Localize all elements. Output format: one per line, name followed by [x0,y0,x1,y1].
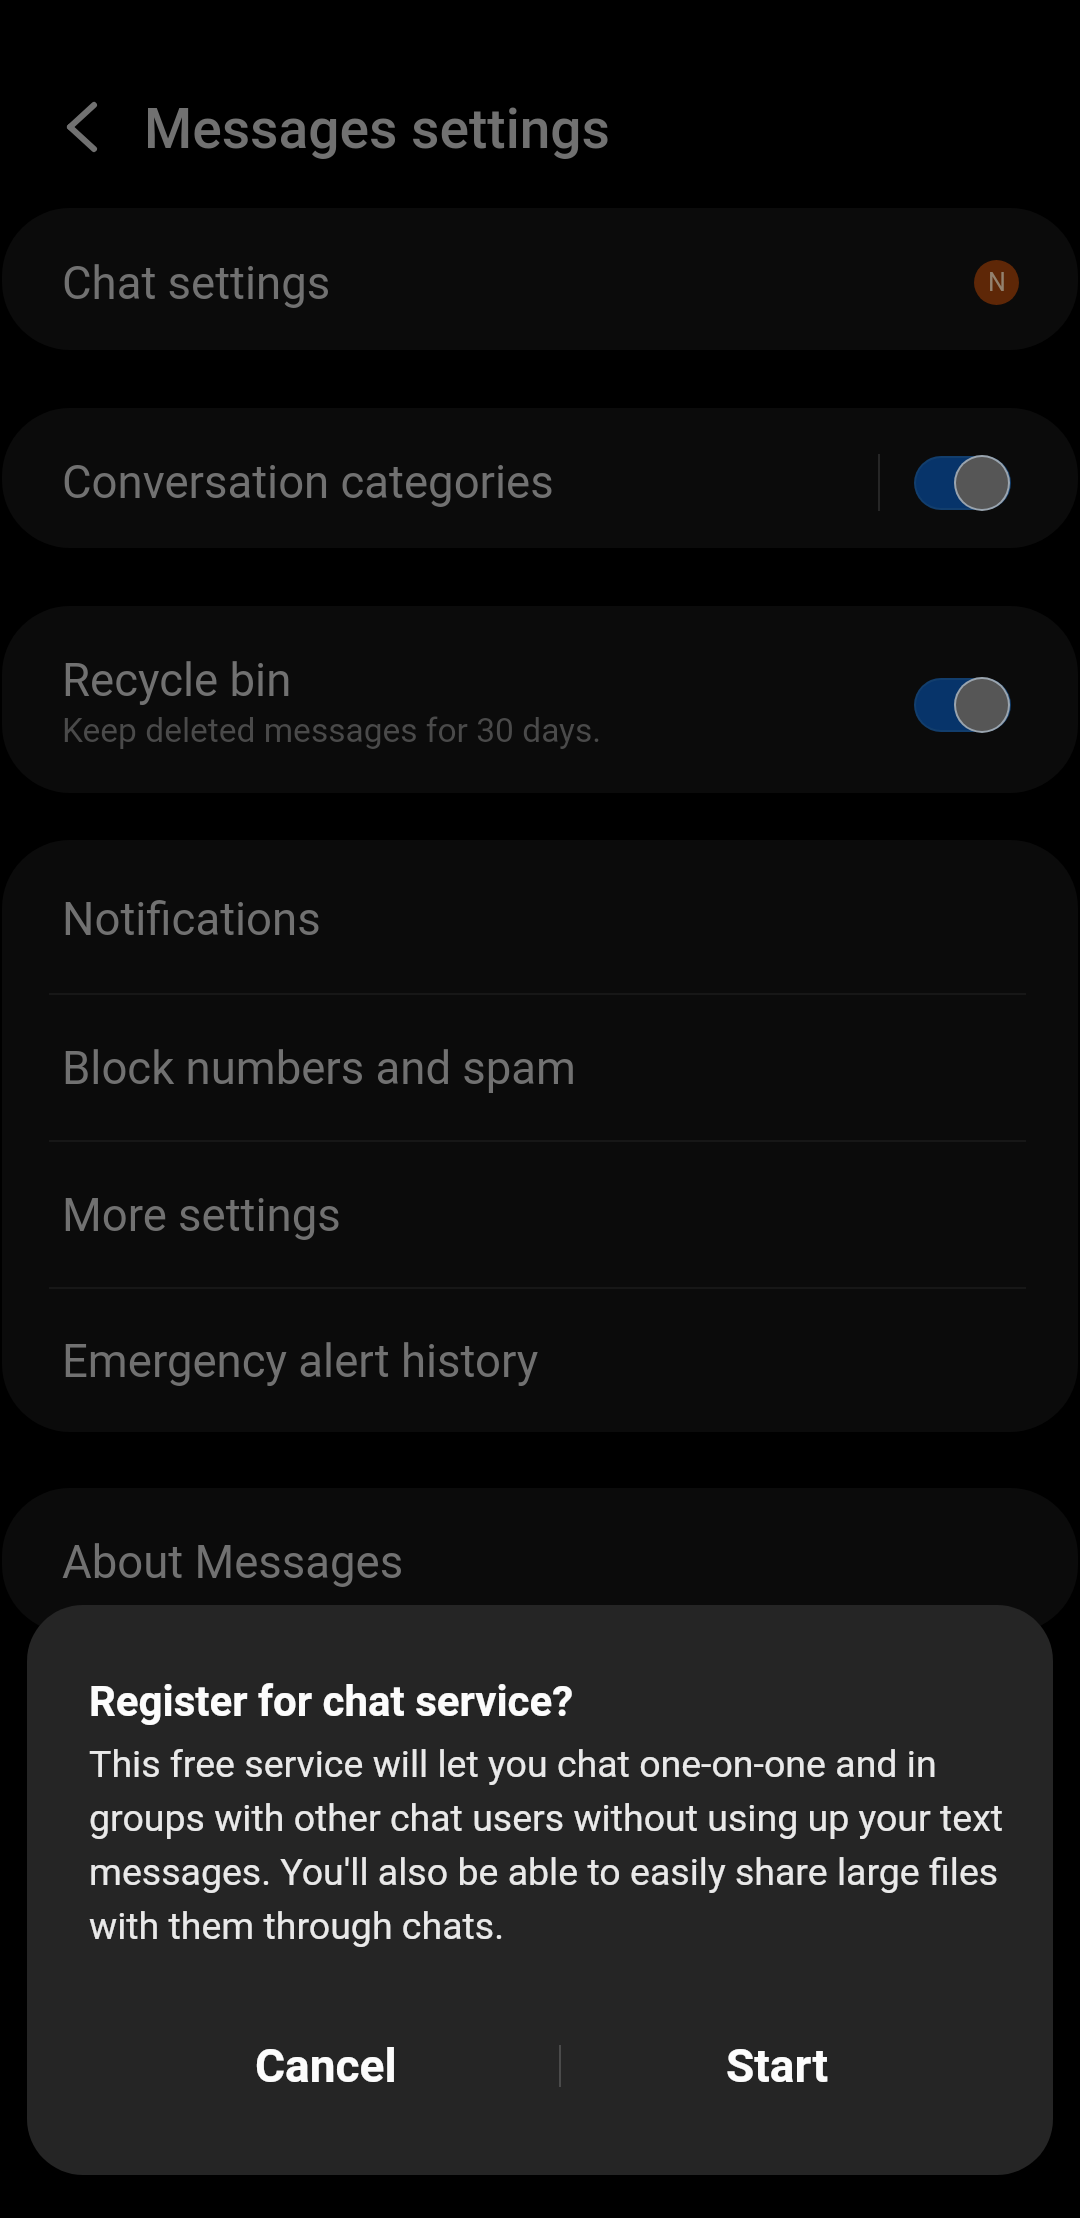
staticText: Cancel [255,2039,397,2093]
button[interactable]: Cancel [27,1983,560,2149]
staticText: More settings [62,1189,341,1242]
staticText: Register for chat service? [89,1677,574,1726]
button[interactable]: Conversation categories [2,408,1078,548]
staticText: Messages settings [144,97,610,161]
staticText: Conversation categories [62,456,554,509]
button[interactable] [913,676,1012,734]
staticText: Keep deleted messages for 30 days. [62,711,602,750]
staticText: This free service will let you chat one-… [89,1742,1035,1948]
button[interactable]: Block numbers and spam [2,995,1078,1140]
staticText: N [988,268,1006,297]
staticText: Notifications [62,893,321,946]
staticText: Start [726,2039,828,2093]
button[interactable]: About Messages [2,1488,1078,1633]
button[interactable]: Start [560,1983,1053,2149]
button[interactable]: Back [34,79,130,175]
button[interactable]: Notifications [2,840,1078,993]
button[interactable]: More settings [2,1142,1078,1287]
staticText: About Messages [62,1536,404,1589]
staticText: Recycle bin [62,654,292,707]
button[interactable]: Recycle bin [2,606,1078,793]
button[interactable] [913,454,1012,512]
button[interactable]: Chat settings [2,208,1078,350]
button[interactable]: Emergency alert history [2,1289,1078,1432]
staticText: Emergency alert history [62,1335,539,1388]
staticText: Chat settings [62,257,331,310]
staticText: Block numbers and spam [62,1042,577,1095]
